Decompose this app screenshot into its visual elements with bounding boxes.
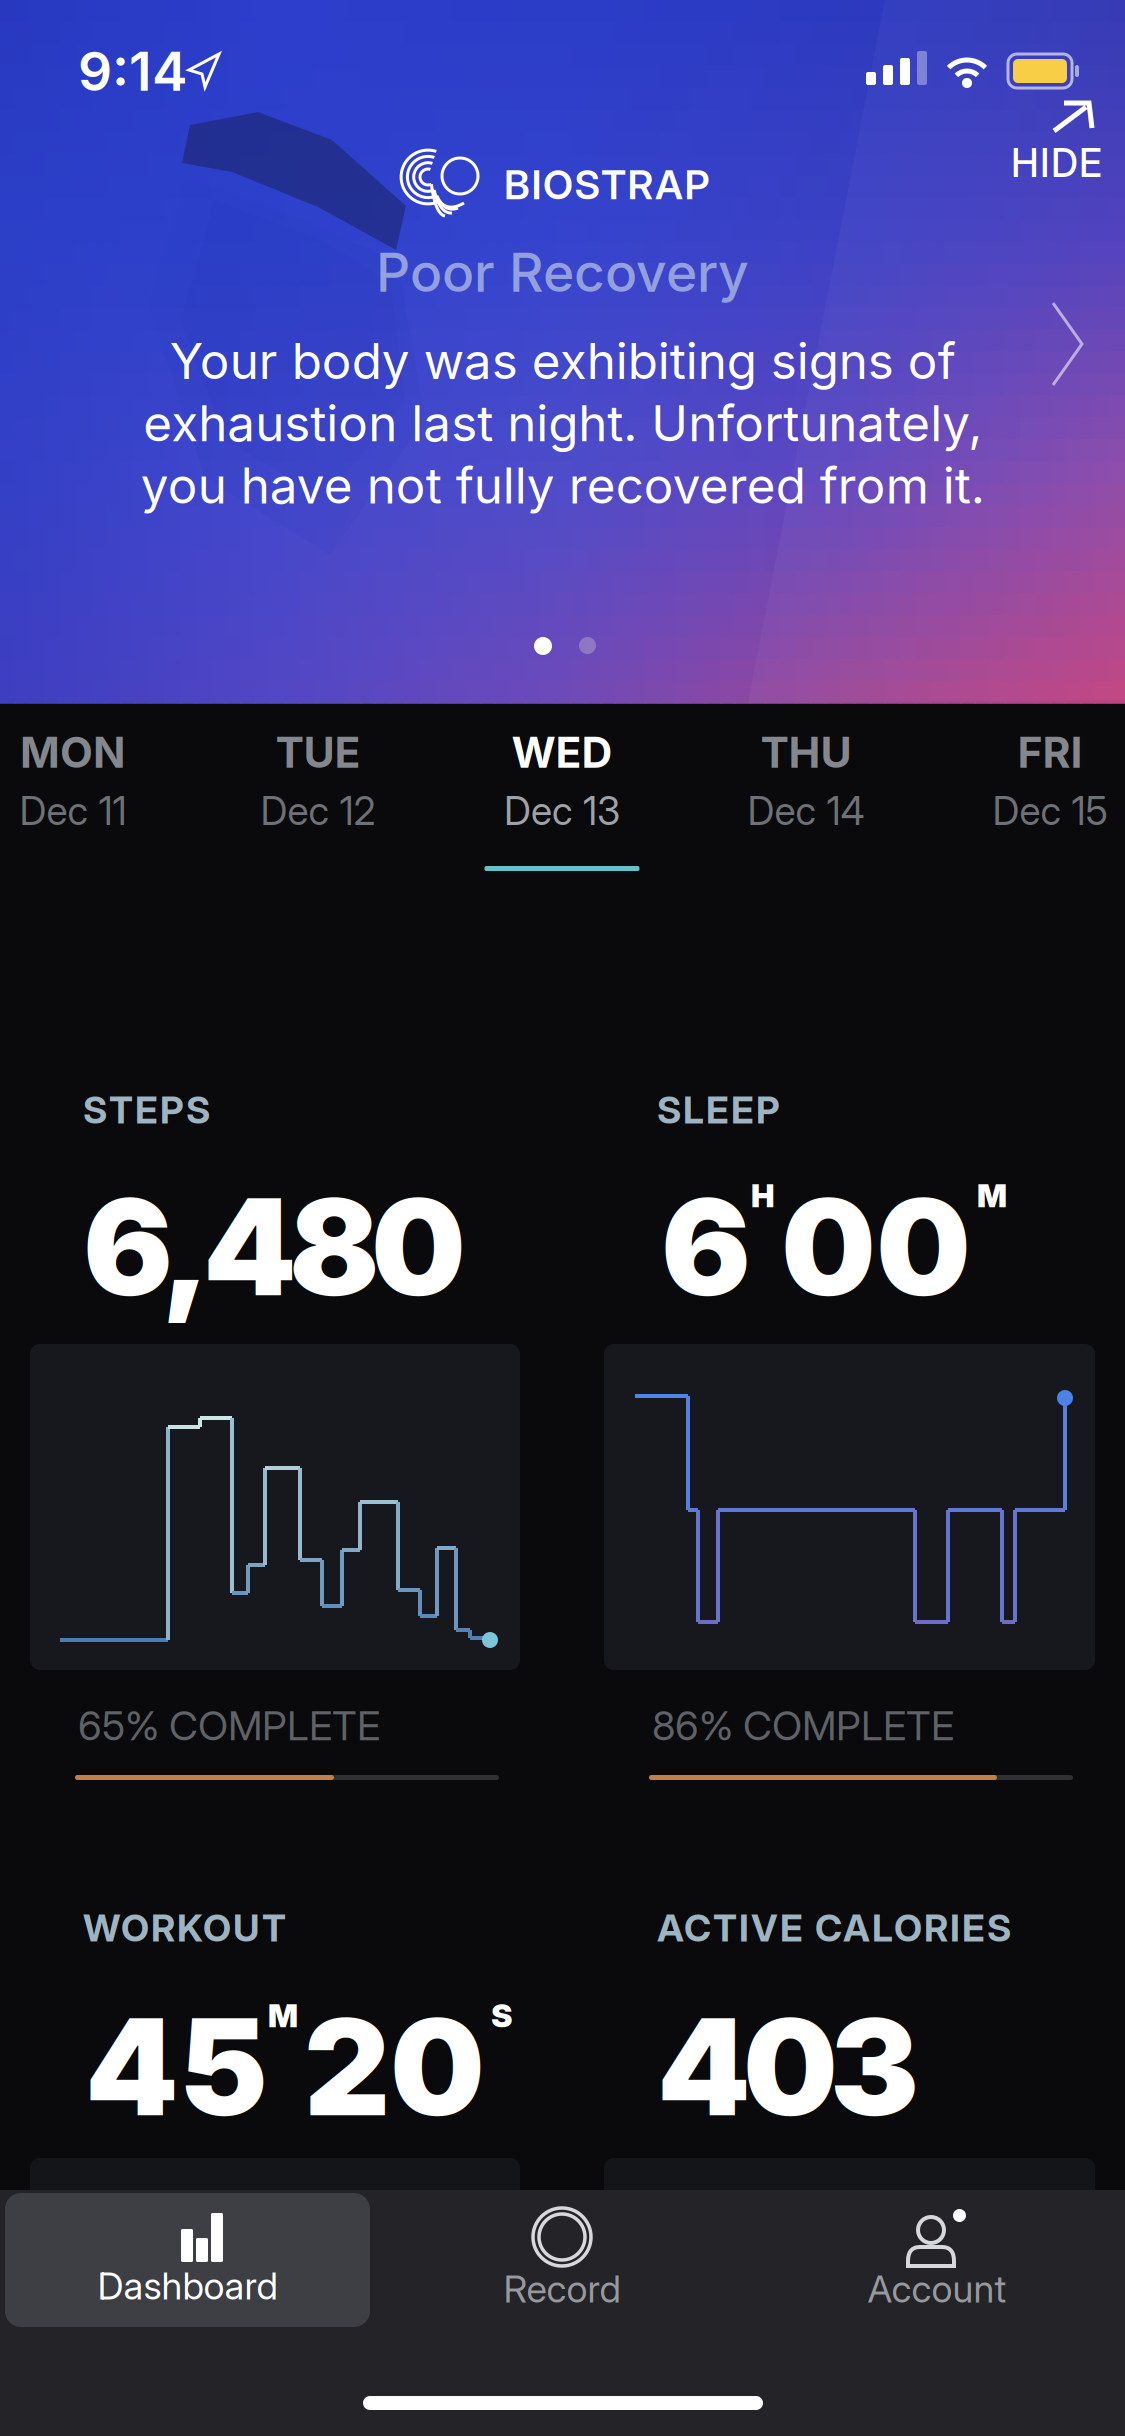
staticText: 6,480: [83, 1168, 466, 1325]
staticText: 403: [657, 1988, 919, 2145]
staticText: 45M 20 S: [85, 1988, 513, 2145]
staticText: Dec 15: [992, 788, 1107, 834]
staticText: 6H 00 M: [661, 1168, 1007, 1325]
staticText: Dec 11: [19, 788, 126, 834]
staticText: ACTIVE CALORIES: [657, 1906, 1011, 1950]
staticText: HIDE: [1011, 140, 1102, 186]
staticText: Dec 12: [260, 788, 375, 834]
button[interactable]: FRI: [930, 727, 1125, 877]
staticText: 86% COMPLETE: [652, 1702, 954, 1749]
button[interactable]: HIDE: [1009, 100, 1109, 182]
button[interactable]: Account: [817, 2193, 1057, 2323]
staticText: FRI: [1017, 727, 1082, 777]
button[interactable]: WED: [442, 727, 682, 877]
staticText: Dashboard: [97, 2264, 277, 2308]
button[interactable]: THU: [686, 727, 926, 877]
staticText: WORKOUT: [83, 1906, 286, 1950]
staticText: WED: [511, 727, 612, 777]
button[interactable]: MON: [0, 727, 193, 877]
staticText: TUE: [275, 727, 360, 777]
staticText: STEPS: [83, 1088, 210, 1132]
staticText: THU: [760, 727, 851, 777]
button[interactable]: TUE: [198, 727, 438, 877]
staticText: Dec 14: [747, 788, 864, 834]
staticText: SLEEP: [657, 1088, 780, 1132]
button[interactable]: Dashboard: [5, 2193, 370, 2327]
staticText: Account: [867, 2267, 1006, 2311]
staticText: BIOSTRAP: [504, 161, 709, 208]
staticText: Dec 13: [504, 788, 620, 834]
staticText: Poor Recovery: [376, 241, 749, 304]
staticText: 65% COMPLETE: [78, 1702, 380, 1749]
staticText: Your body was exhibiting signs of exhaus…: [140, 332, 984, 515]
button[interactable]: Next insight: [1045, 300, 1090, 388]
button[interactable]: Record: [442, 2193, 682, 2323]
staticText: 9:14: [78, 40, 188, 103]
staticText: MON: [20, 727, 126, 777]
staticText: Record: [503, 2267, 620, 2311]
